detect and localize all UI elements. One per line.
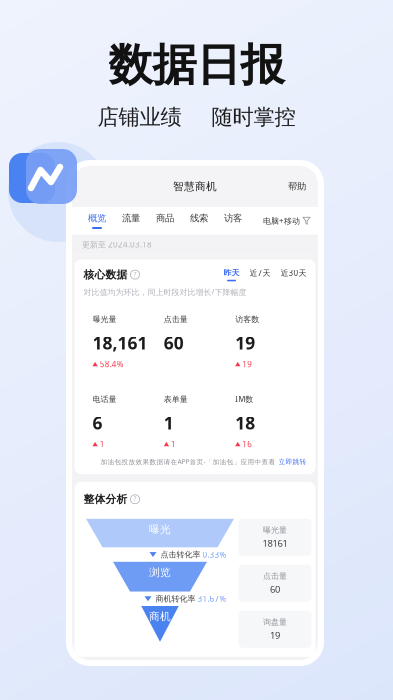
button[interactable]: 流量 bbox=[114, 212, 148, 229]
staticText: 商品 bbox=[156, 212, 174, 224]
staticText: 立即跳转 bbox=[278, 458, 306, 466]
staticText: 曝光量 bbox=[92, 314, 116, 324]
staticText: 整体分析 bbox=[83, 493, 127, 506]
button[interactable]: 立即跳转 bbox=[278, 458, 306, 466]
staticText: 对比值均为环比，同上时段对比增长/下降幅度 bbox=[83, 287, 246, 297]
staticText: 加油包投放效果数据请在APP首页-「加油包」应用中查看 bbox=[100, 457, 275, 466]
staticText: IM数 bbox=[235, 394, 253, 404]
staticText: 店铺业绩 随时掌控 bbox=[97, 104, 295, 130]
staticText: 商机转化率 bbox=[155, 594, 195, 604]
staticText: 概览 bbox=[88, 212, 106, 224]
staticText: 1 bbox=[171, 439, 176, 449]
staticText: 昨天 bbox=[223, 268, 239, 278]
staticText: 核心数据 bbox=[83, 268, 127, 281]
staticText: 18,161 bbox=[92, 331, 147, 354]
button[interactable]: 访客 bbox=[216, 212, 250, 229]
staticText: 点击转化率 bbox=[160, 550, 200, 559]
staticText: 线索 bbox=[190, 212, 208, 224]
staticText: 电话量 bbox=[92, 394, 116, 404]
staticText: 1 bbox=[164, 411, 174, 434]
staticText: 访客数 bbox=[235, 314, 259, 324]
staticText: 18 bbox=[235, 411, 255, 434]
staticText: 浏览 bbox=[149, 566, 171, 579]
button[interactable]: 概览 bbox=[80, 212, 114, 229]
staticText: 点击量 bbox=[263, 571, 287, 581]
staticText: 6 bbox=[92, 411, 102, 434]
staticText: 帮助 bbox=[288, 181, 306, 192]
button[interactable]: 近30天 bbox=[270, 267, 306, 282]
staticText: ? bbox=[133, 494, 136, 503]
staticText: 58.4% bbox=[100, 359, 124, 369]
staticText: 点击量 bbox=[164, 314, 188, 324]
button[interactable]: 商品 bbox=[148, 212, 182, 229]
staticText: 曝光量 bbox=[263, 525, 287, 535]
staticText: 表单量 bbox=[164, 394, 188, 404]
staticText: 商机 bbox=[149, 610, 171, 623]
staticText: 电脑+移动 bbox=[263, 215, 300, 226]
staticText: 18161 bbox=[262, 537, 287, 549]
staticText: 近30天 bbox=[280, 267, 306, 278]
staticText: 数据日报 bbox=[108, 38, 284, 92]
button[interactable]: 昨天 bbox=[213, 268, 239, 281]
staticText: 近7天 bbox=[249, 267, 270, 278]
staticText: 19 bbox=[242, 359, 252, 369]
button[interactable]: 帮助 bbox=[288, 181, 318, 192]
button[interactable]: 近7天 bbox=[239, 267, 270, 282]
staticText: 16 bbox=[242, 439, 252, 449]
button[interactable]: 线索 bbox=[182, 212, 216, 229]
staticText: 1 bbox=[100, 439, 105, 449]
button[interactable]: 电脑+移动 bbox=[263, 215, 318, 226]
staticText: 询盘量 bbox=[263, 617, 287, 627]
staticText: 更新至 2024.03.18 bbox=[82, 239, 152, 250]
staticText: 60 bbox=[164, 331, 184, 354]
staticText: ? bbox=[133, 270, 136, 279]
staticText: 60 bbox=[270, 583, 280, 595]
staticText: 访客 bbox=[224, 212, 242, 224]
staticText: 31.67% bbox=[197, 593, 226, 604]
staticText: 0.33% bbox=[202, 549, 226, 560]
staticText: 19 bbox=[235, 331, 255, 354]
staticText: 流量 bbox=[122, 212, 140, 224]
staticText: 智慧商机 bbox=[173, 180, 217, 193]
staticText: 曝光 bbox=[149, 523, 171, 536]
staticText: 19 bbox=[270, 629, 280, 641]
